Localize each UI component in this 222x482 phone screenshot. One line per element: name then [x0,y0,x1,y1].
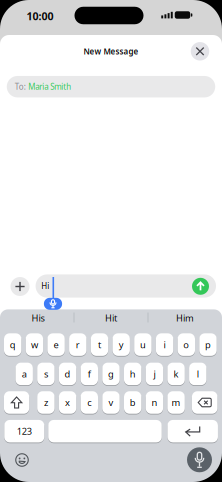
button[interactable]: Dictation [44,298,62,310]
button[interactable]: Return [167,419,218,443]
staticText: q [10,338,16,351]
staticText: m [172,396,181,409]
button[interactable]: b [124,391,141,414]
button[interactable]: e [47,333,65,356]
staticText: His [31,312,44,324]
button[interactable]: f [81,362,98,386]
button[interactable]: Dictate [187,447,212,472]
button[interactable]: i [156,333,173,356]
button[interactable]: n [146,391,163,414]
staticText: Hit [105,312,117,324]
button[interactable]: Delete [192,391,217,414]
button[interactable]: p [199,333,217,356]
staticText: p [205,338,211,351]
button[interactable]: Emoji [14,452,30,468]
button[interactable]: w [26,333,43,356]
button[interactable]: z [37,391,55,414]
button[interactable]: Him [150,308,220,328]
button[interactable]: q [4,333,21,356]
staticText: y [119,338,124,351]
staticText: n [151,396,157,409]
staticText: e [54,338,59,351]
button[interactable]: k [167,362,185,386]
staticText: b [130,396,136,409]
button[interactable]: d [59,362,76,386]
staticText: Hi [41,280,49,291]
staticText: Maria Smith [28,81,71,92]
staticText: 10:00 [26,9,53,23]
button[interactable]: a [15,362,33,386]
button[interactable]: x [59,391,76,414]
staticText: r [76,338,80,351]
staticText: w [31,338,38,351]
staticText: h [130,368,136,380]
staticText: a [22,368,27,380]
staticText: v [108,396,113,409]
staticText [102,416,108,446]
button[interactable]: c [81,391,98,414]
staticText: x [65,396,70,409]
staticText: i [164,338,166,351]
button[interactable]: Add attachment [10,277,29,296]
staticText: Him [176,312,194,324]
button[interactable]: Shift [4,391,29,414]
button[interactable]: Close [191,42,209,60]
staticText: g [108,368,114,380]
button[interactable]: Send [192,278,209,295]
staticText: To: [15,81,26,92]
button[interactable]: v [102,391,120,414]
staticText: t [98,338,101,351]
button[interactable]: His [3,308,73,328]
button[interactable]: h [124,362,141,386]
button[interactable]: 123 [4,419,44,443]
button[interactable]: m [167,391,185,414]
staticText: u [140,338,146,351]
button[interactable]: s [37,362,55,386]
button[interactable]: Hit [76,308,146,328]
staticText: c [87,396,91,409]
staticText: s [44,368,48,380]
button[interactable]: Space [48,419,162,443]
button[interactable]: j [146,362,163,386]
button[interactable]: y [112,333,130,356]
staticText: j [153,368,155,380]
staticText: d [65,368,71,380]
staticText: 123 [17,425,32,437]
staticText: z [44,396,48,409]
staticText: l [197,368,199,380]
button[interactable]: r [69,333,86,356]
button[interactable]: o [178,333,195,356]
button[interactable]: u [134,333,152,356]
staticText: o [183,338,189,351]
staticText: New Message [83,46,138,57]
button[interactable]: t [91,333,108,356]
staticText: k [174,368,179,380]
staticText: f [88,368,91,380]
button[interactable]: l [189,362,206,386]
button[interactable]: g [102,362,120,386]
